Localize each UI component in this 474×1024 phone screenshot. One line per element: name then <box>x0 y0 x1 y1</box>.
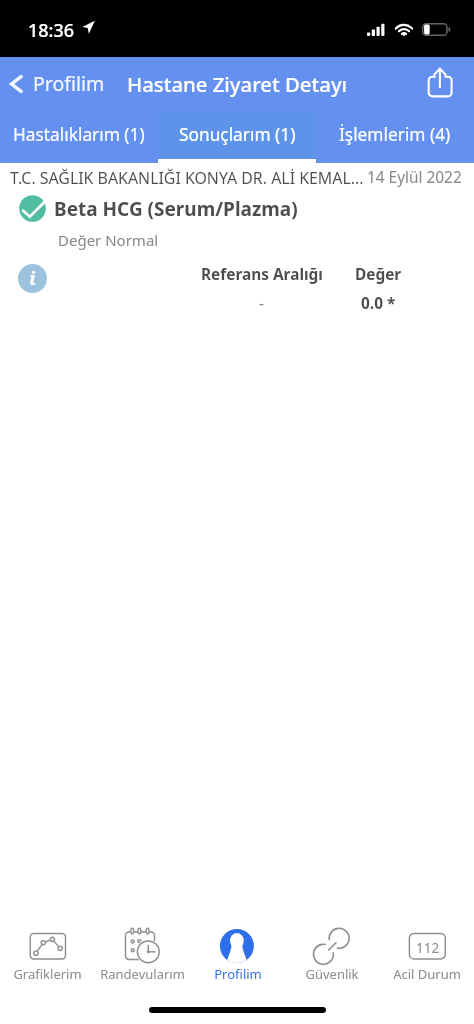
button[interactable]: Randevularım <box>95 922 190 988</box>
button[interactable]: Grafiklerim <box>0 922 95 988</box>
staticText: - <box>259 293 264 314</box>
staticText: Sonuçlarım (1) <box>179 123 296 147</box>
staticText: Grafiklerim <box>13 965 82 983</box>
staticText: Profilim <box>214 965 262 983</box>
button[interactable]: Profilim <box>190 922 285 988</box>
staticText: İşlemlerim (4) <box>339 123 451 147</box>
button[interactable]: Sonuçlarım (1) <box>158 112 316 163</box>
staticText: 14 Eylül 2022 <box>367 167 462 188</box>
staticText: Hastane Ziyaret Detayı <box>127 70 348 98</box>
staticText: 0.0 * <box>361 293 396 314</box>
staticText: Acil Durum <box>393 965 461 983</box>
button[interactable]: Güvenlik <box>284 922 379 988</box>
staticText: T.C. SAĞLIK BAKANLIĞI KONYA DR. ALİ KEMA… <box>10 167 364 189</box>
staticText: 18:36 <box>28 18 75 43</box>
staticText: 112 <box>416 938 440 957</box>
staticText: Değer <box>355 264 402 285</box>
button[interactable]: Hastalıklarım (1) <box>0 112 158 163</box>
staticText: Referans Aralığı <box>201 264 323 285</box>
staticText: Randevularım <box>100 965 185 983</box>
button[interactable]: İşlemlerim (4) <box>316 112 474 163</box>
staticText: Değer Normal <box>58 230 159 250</box>
button[interactable]: Profilim <box>8 70 105 97</box>
staticText: Beta HCG (Serum/Plazma) <box>54 196 298 222</box>
staticText: Hastalıklarım (1) <box>13 123 145 147</box>
staticText: i <box>29 266 36 291</box>
button[interactable]: 112 <box>379 922 474 988</box>
button[interactable]: Paylaş <box>422 61 458 97</box>
staticText: Güvenlik <box>305 965 359 983</box>
staticText: Profilim <box>33 70 105 97</box>
